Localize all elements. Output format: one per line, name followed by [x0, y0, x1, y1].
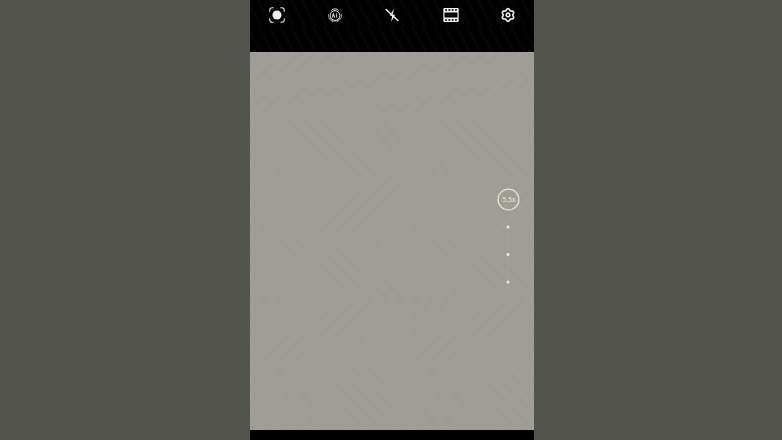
button[interactable]: AI scene detection	[322, 2, 348, 28]
button[interactable]: Video mode	[438, 2, 464, 28]
button[interactable]: Zoom level 5.5x	[497, 188, 520, 211]
button[interactable]: Night mode	[264, 2, 290, 28]
button[interactable]: Settings	[495, 2, 521, 28]
staticText: 5.5x	[502, 195, 516, 205]
button[interactable]: Flash off	[379, 2, 405, 28]
